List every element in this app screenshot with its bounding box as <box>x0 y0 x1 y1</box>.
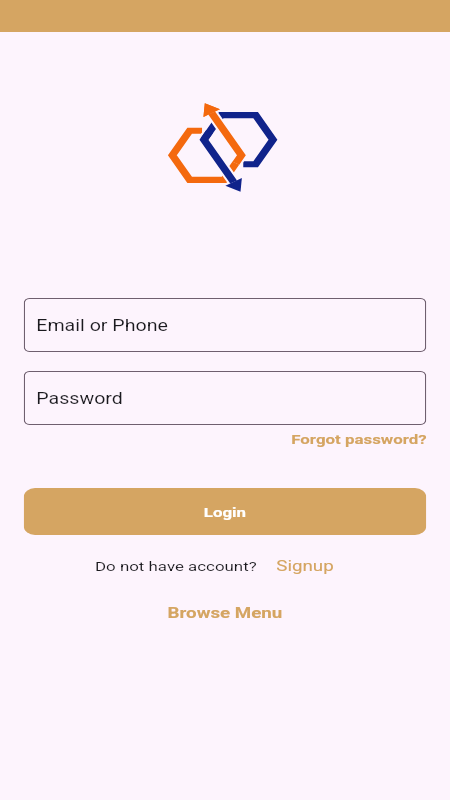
staticText: Password <box>36 389 124 407</box>
staticText: Do not have account? <box>95 558 257 574</box>
staticText: Email or Phone <box>36 316 169 334</box>
button[interactable]: Forgot password? <box>290 430 429 448</box>
button[interactable]: Browse Menu <box>165 603 285 623</box>
staticText: Browse Menu <box>167 604 282 622</box>
button[interactable]: Signup <box>275 556 335 576</box>
button[interactable]: Password <box>24 371 426 425</box>
staticText: Forgot password? <box>291 431 428 447</box>
other: App logo <box>165 96 285 201</box>
button[interactable]: Login <box>24 488 426 535</box>
staticText: Signup <box>276 557 334 575</box>
staticText: Login <box>204 504 246 520</box>
button[interactable]: Email or Phone <box>24 298 426 352</box>
